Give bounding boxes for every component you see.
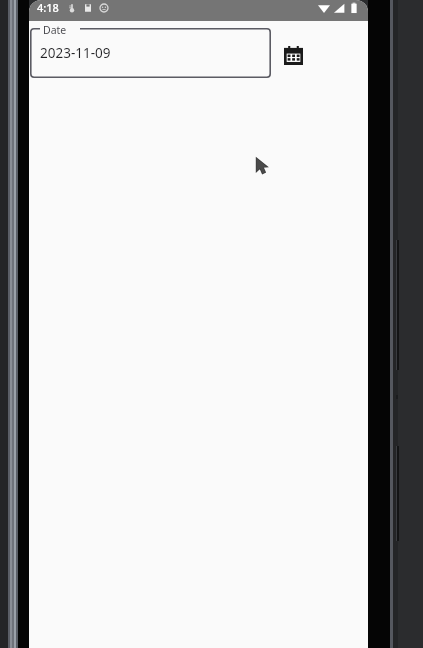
staticText: 4:18 [37, 0, 59, 15]
staticText: Date [43, 23, 67, 37]
button[interactable]: Pick date [281, 43, 305, 67]
staticText: 2023-11-09 [40, 44, 111, 62]
button[interactable]: 2023-11-09 [30, 28, 271, 78]
